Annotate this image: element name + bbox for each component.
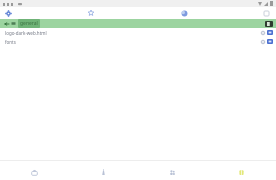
button[interactable]: Open [267,39,273,44]
button[interactable]: Settings [4,9,13,18]
button[interactable]: Open [267,30,273,35]
button[interactable]: Home [0,164,69,180]
button[interactable]: Favorite [86,8,96,18]
button[interactable]: People [138,164,207,180]
button[interactable]: Overview [262,9,271,18]
button[interactable]: logo-dark-web.html [0,28,276,37]
button[interactable]: Explore [69,164,138,180]
staticText: fonts [5,39,16,45]
staticText: general [20,20,38,27]
button[interactable]: More options [265,21,273,27]
button[interactable]: Account [179,8,190,19]
button[interactable]: Back [0,19,276,28]
button[interactable]: Info [259,38,266,45]
button[interactable]: fonts [0,37,276,46]
button[interactable]: Library [207,164,276,180]
button[interactable]: Back [3,20,10,27]
staticText: logo-dark-web.html [5,30,47,36]
button[interactable]: Info [259,29,266,36]
